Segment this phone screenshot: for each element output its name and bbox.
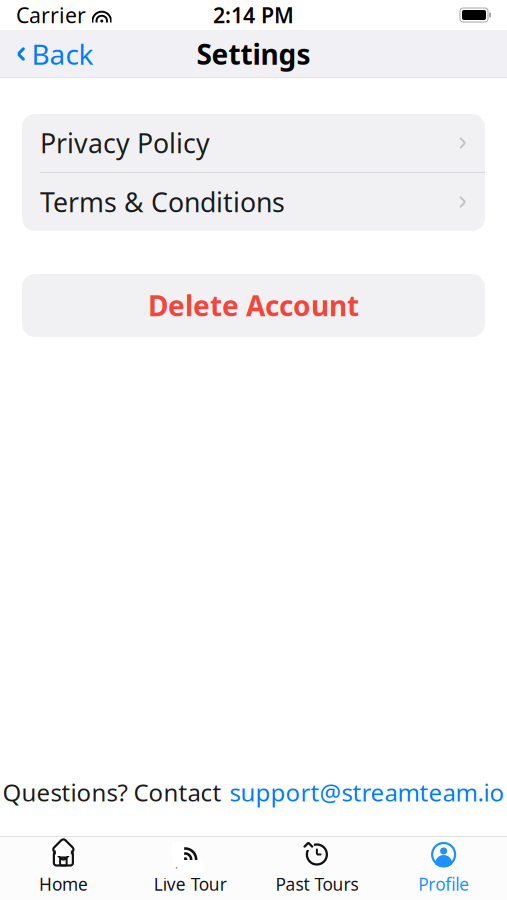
staticText: Privacy Policy: [40, 125, 210, 161]
button[interactable]: support@streamteam.io: [229, 776, 504, 808]
staticText: Terms & Conditions: [40, 184, 285, 220]
button[interactable]: Terms & Conditions: [22, 173, 485, 231]
staticText: Home: [39, 872, 88, 895]
staticText: Past Tours: [275, 872, 358, 895]
staticText: Live Tour: [154, 872, 227, 895]
button[interactable]: Back: [0, 29, 103, 79]
staticText: Delete Account: [148, 287, 359, 324]
staticText: Profile: [418, 872, 469, 895]
button[interactable]: Past Tours: [253, 832, 380, 900]
staticText: Settings: [196, 35, 310, 73]
button[interactable]: Delete Account: [22, 274, 485, 337]
staticText: support@streamteam.io: [229, 776, 504, 808]
staticText: Carrier: [16, 1, 86, 29]
staticText: Back: [31, 35, 93, 73]
staticText: 2:14 PM: [213, 1, 294, 29]
button[interactable]: Privacy Policy: [22, 114, 485, 172]
staticText: Questions? Contact: [2, 776, 221, 808]
button[interactable]: Live Tour: [127, 832, 254, 900]
button[interactable]: Profile: [380, 832, 507, 900]
button[interactable]: Home: [0, 832, 127, 900]
